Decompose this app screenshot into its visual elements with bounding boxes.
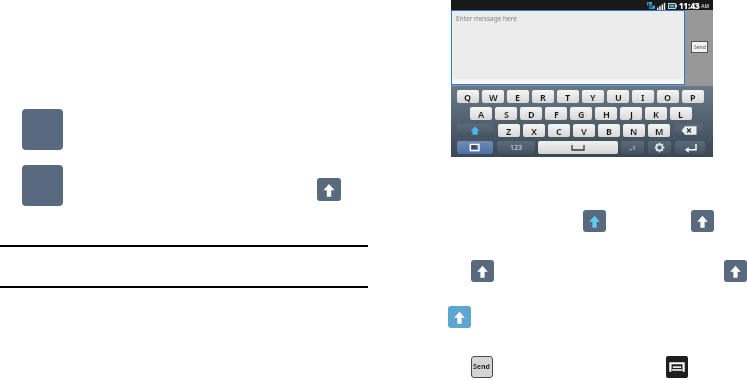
button[interactable]: key (457, 124, 493, 137)
staticText: B (606, 125, 612, 137)
button[interactable]: T (557, 90, 579, 103)
staticText: S (504, 108, 509, 120)
button[interactable]: F (545, 107, 567, 120)
button[interactable]: A (470, 107, 492, 120)
staticText: 123 (510, 143, 523, 153)
staticText: X (531, 125, 538, 137)
button[interactable]: Shift (471, 260, 494, 282)
button[interactable]: G (570, 107, 592, 120)
button[interactable]: Z (498, 124, 520, 137)
button[interactable]: L (670, 107, 692, 120)
button[interactable]: Enter message here (452, 11, 684, 84)
staticText: P (690, 91, 696, 103)
staticText: Enter message here (456, 14, 517, 23)
staticText: F (554, 108, 559, 120)
button[interactable]: Y (582, 90, 604, 103)
button[interactable]: key (621, 141, 644, 154)
staticText: J (630, 108, 633, 120)
button[interactable]: Shift (583, 210, 606, 232)
button[interactable]: C (548, 124, 570, 137)
staticText: .,1 (629, 144, 636, 152)
staticText: O (664, 91, 672, 103)
button[interactable]: Space (538, 141, 618, 154)
button[interactable]: M (648, 124, 670, 137)
button[interactable]: key (648, 141, 671, 154)
button[interactable]: P (682, 90, 704, 103)
button[interactable]: J (620, 107, 642, 120)
button[interactable]: Shift key on (22, 165, 63, 206)
button[interactable]: U (607, 90, 629, 103)
staticText: T (565, 91, 571, 103)
staticText: Y (590, 91, 596, 103)
button[interactable]: Show keyboard (666, 356, 688, 378)
staticText: D (528, 108, 535, 120)
button[interactable]: key (675, 124, 703, 137)
button[interactable]: H (595, 107, 617, 120)
staticText: 11:43 (679, 0, 700, 10)
button[interactable]: key (497, 141, 535, 154)
button[interactable]: O (657, 90, 679, 103)
button[interactable]: key (675, 141, 705, 154)
staticText: N (630, 125, 638, 137)
button[interactable]: X (523, 124, 545, 137)
button[interactable]: E (507, 90, 529, 103)
staticText: E (515, 91, 521, 103)
button[interactable]: N (623, 124, 645, 137)
button[interactable]: V (573, 124, 595, 137)
button[interactable]: Send (691, 41, 708, 53)
staticText: U (615, 91, 622, 103)
staticText: W (489, 91, 498, 103)
button[interactable]: I (632, 90, 654, 103)
button[interactable]: Shift (724, 260, 747, 282)
staticText: G (578, 108, 585, 120)
button[interactable]: D (520, 107, 542, 120)
staticText: K (653, 108, 659, 120)
staticText: I (641, 91, 645, 103)
staticText: V (581, 125, 587, 137)
staticText: Send (694, 44, 706, 51)
staticText: R (540, 91, 546, 103)
button[interactable]: Q (457, 90, 479, 103)
staticText: Send (473, 362, 491, 372)
staticText: L (678, 108, 684, 120)
button[interactable]: Shift (317, 178, 341, 201)
button[interactable]: Shift (448, 306, 471, 328)
staticText: Q (464, 91, 472, 103)
staticText: AM (700, 3, 710, 10)
staticText: M (655, 125, 664, 137)
button[interactable]: B (598, 124, 620, 137)
button[interactable]: Shift (691, 210, 714, 232)
staticText: H (603, 108, 610, 120)
button[interactable]: W (482, 90, 504, 103)
button[interactable]: R (532, 90, 554, 103)
staticText: C (556, 125, 562, 137)
button[interactable]: K (645, 107, 667, 120)
button[interactable]: S (495, 107, 517, 120)
staticText: Z (506, 125, 512, 137)
staticText: A (478, 108, 485, 120)
button[interactable]: key (457, 141, 493, 154)
button[interactable]: Send (471, 356, 493, 378)
button[interactable]: Shift key off (22, 109, 63, 150)
